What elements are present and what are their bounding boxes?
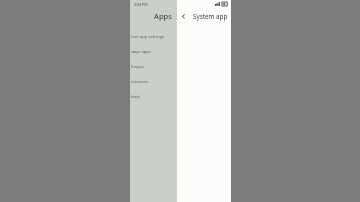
button[interactable]: back: [130, 89, 177, 104]
staticText: Apps: [154, 11, 172, 21]
staticText: back: [131, 94, 141, 100]
staticText: missions: [131, 79, 149, 85]
button[interactable]: ll apps: [130, 59, 177, 74]
staticText: tem app settings: [131, 34, 165, 40]
button[interactable]: tem app settings: [130, 29, 177, 44]
staticText: ll apps: [131, 64, 144, 70]
button[interactable]: Back: [177, 10, 189, 22]
staticText: 3:04 PM: [134, 2, 148, 7]
staticText: sage apps: [131, 49, 151, 55]
button[interactable]: missions: [130, 74, 177, 89]
button[interactable]: sage apps: [130, 44, 177, 59]
staticText: System app: [193, 12, 228, 20]
